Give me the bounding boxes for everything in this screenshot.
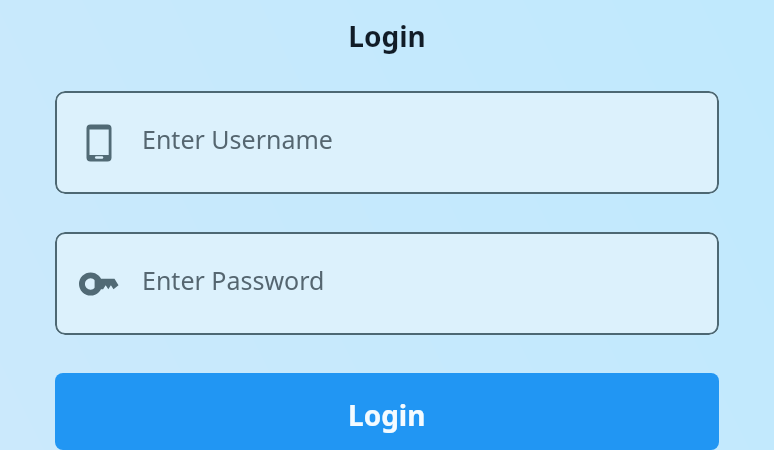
staticText: Enter Username	[142, 122, 333, 156]
button[interactable]: Login	[55, 373, 719, 450]
button[interactable]: Password	[55, 232, 719, 335]
staticText: Login	[348, 396, 426, 434]
other: Password	[79, 262, 119, 306]
button[interactable]: Username	[55, 91, 719, 194]
staticText: Enter Password	[142, 263, 325, 297]
staticText: Login	[0, 17, 774, 55]
other: Username	[79, 121, 119, 165]
